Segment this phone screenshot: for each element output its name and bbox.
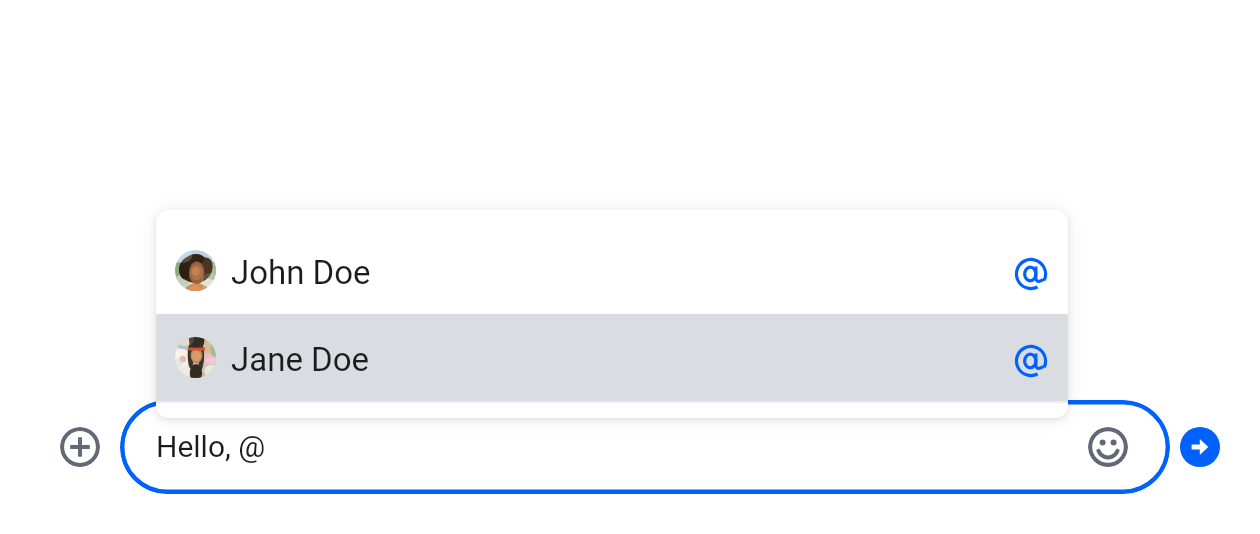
button[interactable]: Send [1180,427,1220,467]
staticText: John Doe [231,253,371,292]
button[interactable]: Hello, @ [120,400,1170,494]
button[interactable]: John Doe [156,227,1068,314]
button[interactable]: Insert emoji [1088,427,1128,467]
staticText: Jane Doe [231,340,370,379]
button[interactable]: Mention John Doe [1009,249,1053,293]
button[interactable]: Add attachment [60,427,100,467]
button[interactable]: Mention Jane Doe [1009,336,1053,380]
button[interactable]: Jane Doe [156,314,1068,401]
staticText: Hello, @ [156,429,266,464]
